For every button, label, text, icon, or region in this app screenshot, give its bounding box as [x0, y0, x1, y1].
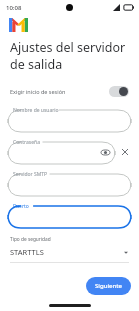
button[interactable]: Tipo de seguridad [0, 236, 139, 263]
staticText: Puerto [13, 203, 29, 210]
button[interactable]: Puerto [8, 202, 131, 228]
staticText: Siguiente [95, 282, 122, 290]
staticText: Exigir inicio de sesión [10, 88, 66, 95]
button[interactable]: Contraseña [8, 138, 115, 164]
staticText: Tipo de seguridad [10, 236, 51, 243]
staticText: STARTTLS [10, 247, 44, 257]
staticText: Contraseña [13, 139, 40, 146]
staticText: 10:08 [6, 4, 22, 12]
staticText: Ajustes del servidor de salida [10, 39, 126, 72]
button[interactable]: Mostrar contraseña [100, 147, 111, 158]
button[interactable]: Servidor SMTP [8, 170, 131, 196]
button[interactable]: Nombre de usuario [8, 106, 131, 132]
button[interactable]: Exigir inicio de sesión [0, 82, 139, 100]
button[interactable]: Borrar [118, 145, 131, 158]
staticText: Nombre de usuario [13, 107, 59, 114]
staticText: Servidor SMTP [13, 171, 48, 178]
button[interactable]: Siguiente [86, 277, 131, 295]
